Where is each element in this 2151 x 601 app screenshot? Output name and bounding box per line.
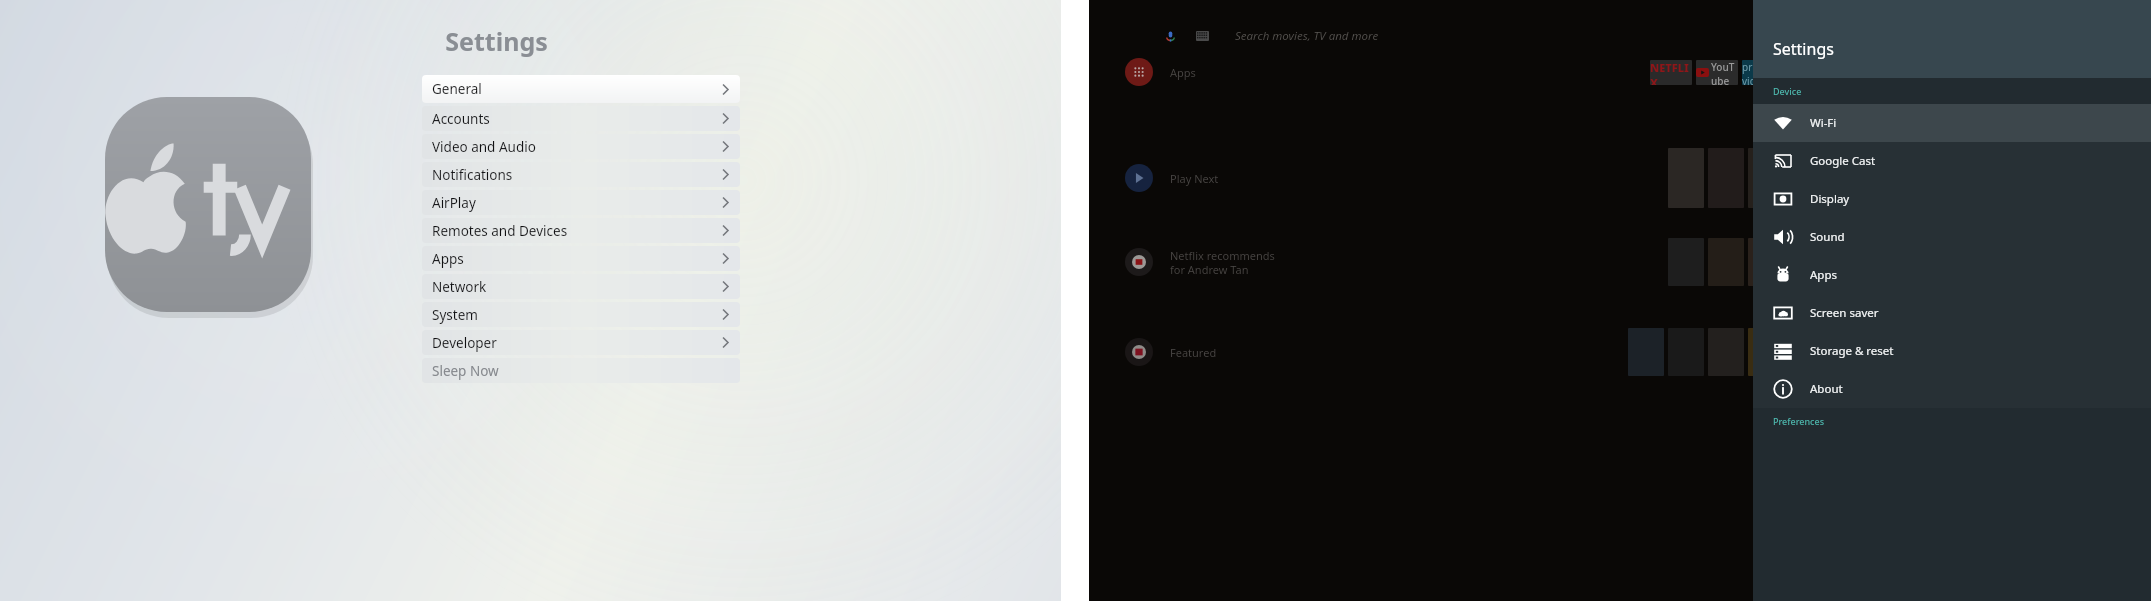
- button[interactable]: Display: [1753, 180, 2151, 218]
- staticText: AirPlay: [432, 194, 476, 212]
- button[interactable]: Developer: [422, 330, 740, 355]
- staticText: Play Next: [1170, 171, 1219, 186]
- staticText: YouTube: [1711, 60, 1738, 85]
- staticText: NETFLIX: [1650, 60, 1692, 85]
- staticText: Apps: [1170, 65, 1196, 80]
- staticText: Display: [1810, 191, 1850, 207]
- button[interactable]: Notifications: [422, 162, 740, 187]
- staticText: Settings: [1773, 38, 1834, 60]
- button[interactable]: Network: [422, 274, 740, 299]
- staticText: Apps: [432, 250, 464, 268]
- button[interactable]: Remotes and Devices: [422, 218, 740, 243]
- staticText: Remotes and Devices: [432, 222, 568, 240]
- staticText: Network: [432, 278, 487, 296]
- staticText: About: [1810, 381, 1843, 397]
- staticText: Featured: [1170, 345, 1217, 360]
- staticText: Apps: [1810, 267, 1838, 283]
- button[interactable]: About: [1753, 370, 2151, 408]
- staticText: Sound: [1810, 229, 1845, 245]
- button[interactable]: Storage & reset: [1753, 332, 2151, 370]
- staticText: Sleep Now: [432, 362, 499, 380]
- staticText: General: [432, 80, 482, 98]
- button[interactable]: [1748, 238, 1784, 286]
- button[interactable]: [1125, 248, 1153, 276]
- button[interactable]: Screen saver: [1753, 294, 2151, 332]
- staticText: Notifications: [432, 166, 513, 184]
- staticText: prime video: [1742, 60, 1784, 85]
- button[interactable]: [1125, 58, 1153, 86]
- button[interactable]: Google Cast: [1753, 142, 2151, 180]
- button[interactable]: System: [422, 302, 740, 327]
- button[interactable]: [1748, 148, 1784, 208]
- button[interactable]: Apps: [1753, 256, 2151, 294]
- button[interactable]: Wi-Fi: [1753, 104, 2151, 142]
- button[interactable]: Apps: [422, 246, 740, 271]
- staticText: Storage & reset: [1810, 343, 1894, 359]
- button[interactable]: AirPlay: [422, 190, 740, 215]
- staticText: Video and Audio: [432, 138, 536, 156]
- button[interactable]: Sound: [1753, 218, 2151, 256]
- staticText: Settings: [0, 24, 1027, 58]
- staticText: Netflix recommends for Andrew Tan: [1170, 248, 1275, 277]
- staticText: Wi-Fi: [1810, 115, 1837, 131]
- staticText: Search movies, TV and more: [1235, 28, 1379, 44]
- staticText: System: [432, 306, 478, 324]
- staticText: Preferences: [1773, 415, 1825, 427]
- staticText: Screen saver: [1810, 305, 1879, 321]
- staticText: Google Cast: [1810, 153, 1876, 169]
- staticText: Accounts: [432, 110, 490, 128]
- button[interactable]: General: [422, 75, 740, 103]
- staticText: Device: [1773, 85, 1802, 97]
- button[interactable]: [1125, 164, 1153, 192]
- button[interactable]: [1748, 328, 1784, 376]
- button[interactable]: Sleep Now: [422, 358, 740, 383]
- button[interactable]: Video and Audio: [422, 134, 740, 159]
- button[interactable]: Accounts: [422, 106, 740, 131]
- button[interactable]: YouTube: [1696, 60, 1738, 85]
- button[interactable]: [1125, 338, 1153, 366]
- staticText: Developer: [432, 334, 497, 352]
- button[interactable]: Search: [1165, 28, 1379, 44]
- button[interactable]: prime video: [1742, 60, 1784, 85]
- button[interactable]: NETFLIX: [1650, 60, 1692, 85]
